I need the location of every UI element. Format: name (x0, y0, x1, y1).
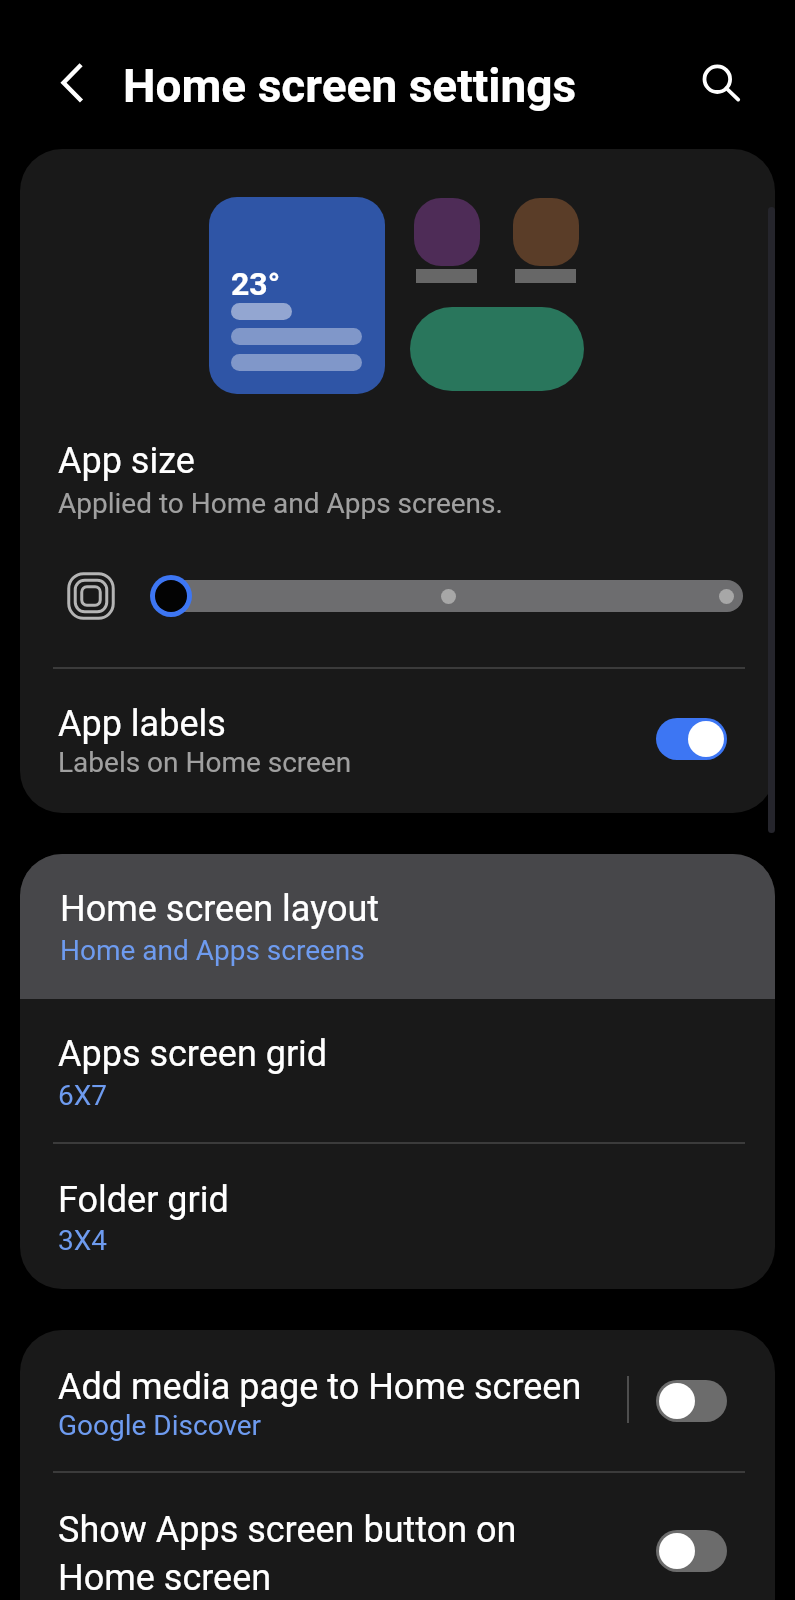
button[interactable]: Apps screen grid (20, 999, 775, 1142)
staticText: App size (58, 440, 195, 482)
staticText: Home screen settings (123, 59, 577, 113)
staticText: 6X7 (58, 1079, 108, 1112)
staticText: App labels (58, 703, 226, 745)
button[interactable]: Home screen layout (20, 854, 775, 999)
staticText: Home screen layout (60, 888, 380, 930)
button[interactable]: Show Apps screen button on Home screen (20, 1472, 775, 1600)
button[interactable]: Add media page to Home screen (656, 1380, 727, 1422)
button[interactable]: Navigate up (44, 54, 102, 112)
staticText: Show Apps screen button on Home screen (58, 1509, 563, 1599)
button[interactable]: App size slider (152, 580, 743, 612)
staticText: Home and Apps screens (60, 934, 365, 967)
button[interactable]: Folder grid (20, 1143, 775, 1289)
button[interactable]: Search (689, 51, 747, 109)
staticText: Add media page to Home screen (58, 1366, 582, 1408)
staticText: 23° (231, 265, 281, 303)
staticText: Applied to Home and Apps screens. (58, 487, 503, 520)
button[interactable]: App labels (20, 668, 775, 813)
button[interactable]: Add media page to Home screen (20, 1330, 775, 1471)
staticText: Apps screen grid (58, 1033, 328, 1075)
other: App size (66, 571, 116, 621)
staticText: Folder grid (58, 1179, 229, 1221)
staticText: 3X4 (58, 1224, 108, 1257)
button[interactable]: App labels (656, 718, 727, 760)
staticText: Google Discover (58, 1409, 262, 1442)
staticText: Labels on Home screen (58, 746, 352, 779)
button[interactable]: Show Apps screen button on Home screen (656, 1530, 727, 1572)
